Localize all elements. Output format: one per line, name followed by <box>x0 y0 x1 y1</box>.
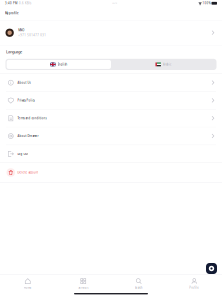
staticText: 0.6 KB/s <box>19 1 31 5</box>
button[interactable]: Privacy Policy <box>0 92 222 109</box>
staticText: Search <box>135 286 143 289</box>
staticText: Home <box>24 286 32 289</box>
staticText: Arabic <box>163 63 171 66</box>
staticText: Profile <box>189 286 199 289</box>
button[interactable]: Profile <box>166 276 222 291</box>
button[interactable]: English <box>7 60 111 69</box>
staticText: Delete account <box>17 171 38 174</box>
button[interactable]: Home <box>0 276 55 291</box>
staticText: 3:40 PM <box>5 1 17 5</box>
button[interactable]: About Dreamer <box>0 127 222 145</box>
staticText: +971 501477 031 <box>18 33 46 37</box>
button[interactable]: Chat support <box>206 263 217 274</box>
staticText: About Us <box>17 81 30 84</box>
staticText: 100% <box>202 1 210 5</box>
staticText: Services <box>78 286 88 289</box>
button[interactable]: About Us <box>0 74 222 91</box>
button[interactable]: Delete account <box>0 163 222 182</box>
button[interactable]: Services <box>55 276 111 291</box>
staticText: VoLTE <box>112 2 117 4</box>
staticText: Language <box>6 49 22 54</box>
staticText: English <box>57 63 67 66</box>
button[interactable]: Arabic <box>111 60 215 69</box>
button[interactable]: Terms and conditions <box>0 110 222 127</box>
staticText: Terms and conditions <box>17 116 46 120</box>
staticText: About Dreamer <box>17 134 38 138</box>
staticText: My profile <box>5 11 19 15</box>
button[interactable]: Search <box>111 276 166 291</box>
staticText: Log Out <box>17 152 28 156</box>
staticText: Privacy Policy <box>17 99 34 102</box>
staticText: MNO <box>18 28 24 32</box>
button[interactable]: Log Out <box>0 145 222 162</box>
button[interactable]: MNO <box>0 20 222 45</box>
